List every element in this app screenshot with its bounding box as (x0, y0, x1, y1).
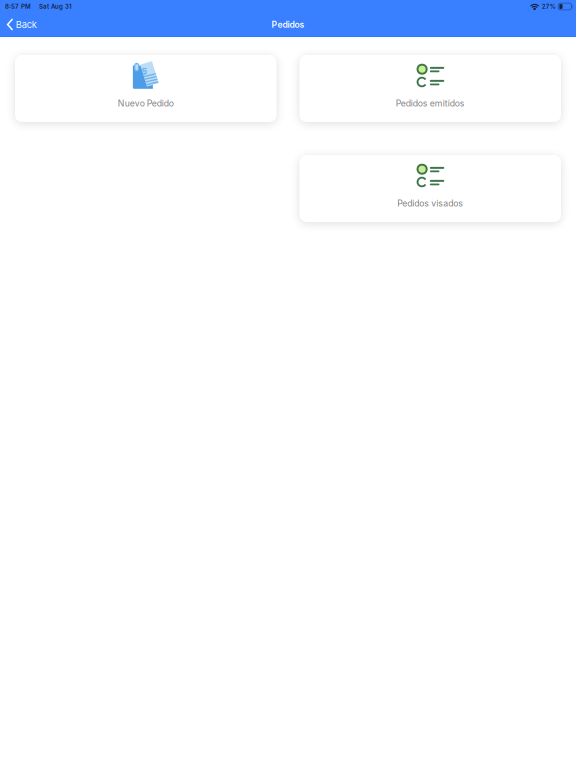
staticText: Pedidos visados (397, 198, 463, 208)
staticText: Nuevo Pedido (118, 98, 174, 108)
button[interactable]: Pedidos visados (299, 155, 561, 222)
button[interactable]: Back (0, 13, 45, 36)
staticText: 8:57 PM (5, 3, 31, 10)
button[interactable]: Pedidos emitidos (299, 55, 561, 122)
staticText: Sat Aug 31 (39, 3, 72, 10)
button[interactable]: Nuevo Pedido (15, 55, 276, 122)
staticText: 27% (542, 3, 556, 10)
staticText: Pedidos (271, 19, 304, 30)
staticText: Back (16, 19, 37, 30)
staticText: Pedidos emitidos (396, 98, 465, 108)
